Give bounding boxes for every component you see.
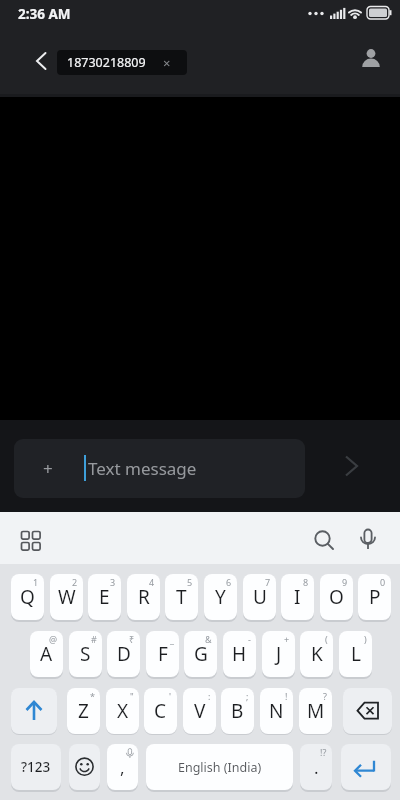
- staticText: ×: [163, 54, 171, 72]
- staticText: T: [176, 584, 187, 610]
- button[interactable]: T: [165, 574, 198, 620]
- button[interactable]: Y: [204, 574, 237, 620]
- button[interactable]: U: [243, 574, 276, 620]
- button[interactable]: O: [320, 574, 353, 620]
- button[interactable]: E: [88, 574, 121, 620]
- button[interactable]: S: [69, 631, 102, 677]
- button[interactable]: [16, 526, 46, 556]
- button[interactable]: I: [281, 574, 314, 620]
- button[interactable]: [352, 524, 384, 556]
- staticText: U: [253, 584, 267, 610]
- staticText: Z: [78, 698, 89, 724]
- button[interactable]: English (India): [146, 744, 293, 790]
- staticText: ;: [246, 690, 249, 702]
- staticText: Q: [20, 584, 35, 610]
- button[interactable]: F: [146, 631, 179, 677]
- staticText: :: [208, 690, 211, 702]
- button[interactable]: A: [30, 631, 63, 677]
- staticText: @: [49, 633, 58, 645]
- button[interactable]: [343, 688, 392, 734]
- staticText: B: [231, 698, 244, 724]
- staticText: ": [130, 690, 134, 702]
- staticText: R: [138, 584, 150, 610]
- staticText: E: [99, 584, 110, 610]
- button[interactable]: [11, 688, 57, 734]
- button[interactable]: 18730218809: [57, 50, 187, 75]
- staticText: !?: [320, 746, 327, 758]
- staticText: ,: [120, 756, 125, 779]
- staticText: I: [294, 584, 301, 610]
- staticText: ?123: [21, 758, 51, 776]
- button[interactable]: N: [260, 688, 293, 734]
- staticText: +: [43, 457, 53, 480]
- staticText: P: [369, 584, 381, 610]
- button[interactable]: [341, 744, 391, 790]
- staticText: O: [329, 584, 344, 610]
- button[interactable]: Q: [11, 574, 44, 620]
- staticText: 4: [149, 576, 155, 588]
- staticText: A: [40, 641, 53, 667]
- button[interactable]: ,: [107, 744, 138, 790]
- button[interactable]: ?123: [11, 744, 61, 790]
- staticText: F: [158, 641, 168, 667]
- staticText: ₹: [129, 633, 135, 645]
- button[interactable]: G: [184, 631, 217, 677]
- staticText: (: [325, 633, 328, 645]
- staticText: *: [90, 690, 95, 702]
- staticText: W: [58, 584, 76, 610]
- button[interactable]: [26, 46, 56, 76]
- staticText: .: [314, 756, 319, 779]
- button[interactable]: +: [14, 439, 305, 498]
- staticText: 1: [33, 576, 39, 588]
- staticText: N: [269, 698, 284, 724]
- staticText: 9: [342, 576, 348, 588]
- button[interactable]: .: [300, 744, 332, 790]
- button[interactable]: P: [358, 574, 391, 620]
- staticText: 2: [72, 576, 78, 588]
- staticText: K: [311, 641, 323, 667]
- button[interactable]: L: [339, 631, 372, 677]
- button[interactable]: [308, 524, 340, 556]
- staticText: M: [307, 698, 325, 724]
- staticText: English (India): [178, 759, 262, 776]
- staticText: #: [91, 633, 97, 645]
- staticText: +: [284, 633, 290, 645]
- button[interactable]: J: [262, 631, 295, 677]
- staticText: X: [117, 698, 129, 724]
- staticText: 7: [265, 576, 271, 588]
- staticText: ): [364, 633, 367, 645]
- staticText: J: [276, 641, 282, 667]
- staticText: G: [194, 641, 208, 667]
- staticText: 5: [187, 576, 193, 588]
- button[interactable]: [338, 452, 366, 480]
- staticText: Y: [215, 584, 226, 610]
- staticText: S: [80, 641, 91, 667]
- staticText: 6: [226, 576, 232, 588]
- button[interactable]: W: [50, 574, 83, 620]
- button[interactable]: [356, 42, 386, 72]
- staticText: _: [170, 633, 174, 645]
- button[interactable]: K: [300, 631, 333, 677]
- staticText: 3: [110, 576, 116, 588]
- staticText: 18730218809: [67, 54, 146, 71]
- button[interactable]: H: [223, 631, 256, 677]
- button[interactable]: Z: [67, 688, 100, 734]
- staticText: H: [232, 641, 247, 667]
- staticText: C: [154, 698, 167, 724]
- button[interactable]: B: [221, 688, 254, 734]
- button[interactable]: R: [127, 574, 160, 620]
- staticText: !: [285, 690, 288, 702]
- staticText: Text message: [88, 457, 197, 480]
- button[interactable]: D: [107, 631, 140, 677]
- staticText: &: [205, 633, 212, 645]
- staticText: -: [248, 633, 251, 645]
- staticText: 8: [303, 576, 309, 588]
- button[interactable]: C: [144, 688, 177, 734]
- button[interactable]: X: [106, 688, 139, 734]
- staticText: 2:36 AM: [18, 5, 71, 23]
- staticText: ': [169, 690, 172, 702]
- button[interactable]: M: [299, 688, 332, 734]
- button[interactable]: [69, 744, 100, 790]
- button[interactable]: V: [183, 688, 216, 734]
- staticText: ?: [323, 690, 327, 702]
